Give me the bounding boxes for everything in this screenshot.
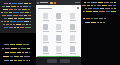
button[interactable]: Grid item xyxy=(53,35,64,43)
button[interactable]: Grid item xyxy=(67,13,78,21)
button[interactable]: Grid item xyxy=(53,13,64,21)
button[interactable]: Grid item xyxy=(40,24,51,32)
button[interactable]: Grid item xyxy=(40,46,51,54)
button[interactable]: Grid item xyxy=(53,46,64,54)
button[interactable]: Grid item xyxy=(67,46,78,54)
button[interactable] xyxy=(37,56,80,57)
button[interactable]: Grid item xyxy=(40,13,51,21)
button[interactable]: Search xyxy=(37,6,80,10)
button[interactable]: Grid item xyxy=(67,35,78,43)
button[interactable]: Grid item xyxy=(40,35,51,43)
button[interactable]: Grid item xyxy=(67,24,78,32)
button[interactable]: Grid item xyxy=(53,24,64,32)
